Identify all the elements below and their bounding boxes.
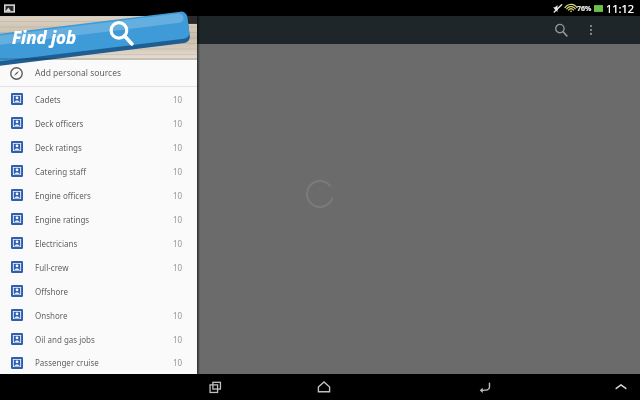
staticText: 10 bbox=[173, 142, 183, 153]
button[interactable]: Electricians bbox=[0, 231, 197, 255]
button[interactable]: Home bbox=[307, 374, 341, 400]
staticText: Catering staff bbox=[35, 166, 173, 177]
button[interactable]: Expand bbox=[608, 374, 634, 400]
staticText: 10 bbox=[173, 334, 183, 345]
staticText: 10 bbox=[173, 262, 183, 273]
button[interactable]: Cadets bbox=[0, 87, 197, 111]
staticText: Oil and gas jobs bbox=[35, 334, 173, 345]
button[interactable]: More options bbox=[578, 17, 604, 43]
button[interactable]: Engine ratings bbox=[0, 207, 197, 231]
button[interactable]: Back bbox=[468, 374, 502, 400]
staticText: 10 bbox=[173, 94, 183, 105]
staticText: 10 bbox=[173, 166, 183, 177]
button[interactable]: Full-crew bbox=[0, 255, 197, 279]
staticText: 10 bbox=[173, 357, 183, 368]
staticText: 10 bbox=[173, 214, 183, 225]
staticText: 10 bbox=[173, 118, 183, 129]
button[interactable]: Recents bbox=[198, 374, 232, 400]
button[interactable]: Offshore bbox=[0, 279, 197, 303]
staticText: Engine officers bbox=[35, 190, 173, 201]
staticText: Find job bbox=[12, 26, 77, 49]
staticText: 10 bbox=[173, 190, 183, 201]
button[interactable]: Oil and gas jobs bbox=[0, 327, 197, 351]
staticText: Electricians bbox=[35, 238, 173, 249]
staticText: Engine ratings bbox=[35, 214, 173, 225]
staticText: 10 bbox=[173, 310, 183, 321]
button[interactable]: Search bbox=[548, 17, 574, 43]
staticText: 76% bbox=[577, 4, 592, 14]
staticText: Deck ratings bbox=[35, 142, 173, 153]
button[interactable]: Deck officers bbox=[0, 111, 197, 135]
staticText: Deck officers bbox=[35, 118, 173, 129]
staticText: Onshore bbox=[35, 310, 173, 321]
staticText: 10 bbox=[173, 238, 183, 249]
staticText: 11:12 bbox=[606, 1, 635, 16]
button[interactable]: Onshore bbox=[0, 303, 197, 327]
button[interactable]: Deck ratings bbox=[0, 135, 197, 159]
button[interactable]: Catering staff bbox=[0, 159, 197, 183]
staticText: Passenger cruise bbox=[35, 357, 173, 368]
button[interactable]: Add personal sources bbox=[0, 60, 197, 86]
button[interactable]: Engine officers bbox=[0, 183, 197, 207]
staticText: Cadets bbox=[35, 94, 173, 105]
staticText: urchasing Operations bbox=[2, 339, 105, 352]
button[interactable]: Passenger cruise bbox=[0, 351, 197, 374]
staticText: Full-crew bbox=[35, 262, 173, 273]
staticText: Add personal sources bbox=[35, 67, 122, 79]
staticText: Offshore bbox=[35, 286, 183, 297]
